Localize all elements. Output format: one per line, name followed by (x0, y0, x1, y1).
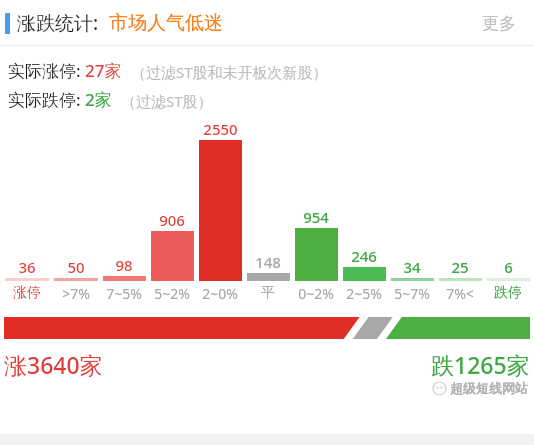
staticText: >7% (62, 284, 90, 303)
staticText: 平 (261, 284, 275, 302)
staticText: 市场人气低迷 (109, 11, 223, 35)
button[interactable]: 更多 (478, 9, 520, 38)
staticText: 0~2% (298, 284, 334, 303)
staticText: 36 (18, 257, 36, 277)
staticText: 实际涨停: (8, 59, 81, 82)
staticText: 148 (255, 252, 281, 272)
button[interactable]: 50 (51, 257, 100, 281)
staticText: 34 (403, 257, 421, 277)
staticText: 跌停 (494, 284, 522, 302)
button[interactable]: 6 (484, 257, 532, 281)
button[interactable]: 148 (244, 252, 292, 281)
staticText: 更多 (482, 13, 516, 34)
staticText: 2550 (203, 119, 238, 139)
button[interactable] (4, 317, 530, 339)
button[interactable]: 25 (436, 257, 484, 281)
staticText: 7~5% (106, 284, 142, 303)
staticText: 涨停 (13, 284, 41, 302)
staticText: 27家 (85, 59, 122, 82)
staticText: 954 (303, 207, 329, 227)
staticText: 2家 (85, 88, 112, 111)
button[interactable]: 98 (100, 255, 148, 281)
button[interactable]: 跌1265家 (431, 349, 530, 380)
staticText: 涨跌统计: (17, 10, 99, 36)
button[interactable]: 954 (292, 207, 340, 281)
staticText: 实际跌停: (8, 88, 81, 111)
staticText: 5~7% (394, 284, 430, 303)
staticText: 98 (115, 255, 133, 275)
button[interactable]: 2550 (196, 119, 244, 281)
staticText: 超级短线网站 (450, 380, 528, 396)
staticText: 906 (159, 210, 185, 230)
staticText: 246 (351, 246, 377, 266)
staticText: 6 (504, 257, 513, 277)
button[interactable]: 906 (148, 210, 196, 281)
staticText: （过滤ST股和未开板次新股） (131, 62, 328, 82)
staticText: 7%< (446, 284, 474, 303)
button[interactable]: 34 (388, 257, 436, 281)
staticText: 25 (451, 257, 469, 277)
button[interactable]: 36 (2, 257, 51, 281)
button[interactable]: 涨3640家 (4, 349, 103, 380)
staticText: 2~5% (346, 284, 382, 303)
staticText: 5~2% (154, 284, 190, 303)
staticText: 50 (67, 257, 85, 277)
button[interactable]: 涨跌统计: (0, 0, 534, 46)
staticText: （过滤ST股） (121, 91, 213, 111)
other: WeChat account (432, 381, 447, 396)
staticText: 2~0% (202, 284, 238, 303)
button[interactable]: 246 (340, 246, 388, 281)
